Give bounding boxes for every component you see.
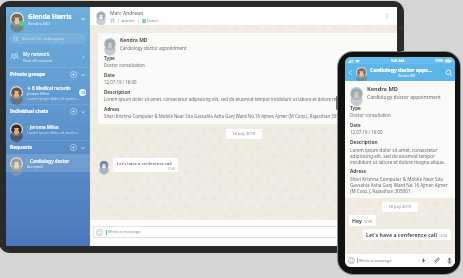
staticText: Type [350, 105, 361, 111]
button[interactable]: Attach file [433, 257, 440, 264]
button[interactable]: Back [346, 68, 355, 77]
staticText: 9:41 AM [391, 58, 404, 63]
staticText: Lorem ipsum dolor sit amet, consectetur … [350, 147, 450, 165]
button[interactable]: My network [6, 48, 90, 65]
button[interactable]: Cardiology doctor [6, 154, 90, 172]
button[interactable]: More options [382, 11, 392, 21]
staticText: 12:30 [439, 234, 448, 238]
button[interactable]: Private groups [6, 68, 90, 81]
staticText: 18 July 2019 [388, 204, 412, 210]
staticText: Glenda Harris [28, 12, 72, 21]
button[interactable]: 6 Medical records [6, 81, 90, 104]
staticText: 12:30 [364, 220, 373, 224]
staticText: Search for colleagues [22, 36, 65, 42]
staticText: Description [104, 89, 131, 95]
staticText: 18 July 2019 [232, 131, 256, 137]
staticText: Cardiology doctor appointment [120, 45, 187, 51]
staticText: Cardiology doctor appointment [367, 94, 441, 101]
staticText: 6 Medical records [32, 85, 71, 91]
staticText: Doctor consultation [104, 62, 145, 68]
staticText: Let's have a conference call [366, 231, 437, 238]
staticText: Kendra MD [370, 74, 444, 78]
button[interactable]: Requests [6, 141, 90, 154]
staticText: Kendra MD [28, 21, 51, 27]
staticText: Adress [350, 168, 367, 175]
staticText: Cardiology doctor appo... [370, 67, 433, 74]
staticText: Accepted [27, 164, 43, 169]
staticText: Lorem ipsum dolor sit amet s... [27, 130, 80, 135]
staticText: Marc Andrews [110, 10, 144, 17]
button[interactable]: Individual chats [6, 105, 90, 118]
button[interactable]: Quick action [420, 257, 427, 264]
staticText: Hey [352, 217, 362, 224]
staticText: Lorem ipsum dolor sit amet, consectetur … [104, 96, 362, 102]
staticText: View all contacts [23, 58, 53, 63]
staticText: Description [350, 139, 378, 146]
button[interactable]: Search for colleagues [10, 33, 86, 44]
staticText: Date [350, 122, 361, 128]
staticText: Write a message [108, 229, 141, 235]
button[interactable]: Search [444, 68, 453, 77]
staticText: 12.07.19 / 16:00 [104, 79, 137, 85]
staticText: Shari Krishna Computer & Mobile Near Sit… [104, 113, 347, 119]
button[interactable]: Glenda Harris [6, 9, 90, 29]
staticText: Adress [104, 106, 120, 112]
button[interactable]: Record voice message [446, 257, 453, 264]
staticText: 12:30 [117, 167, 175, 171]
staticText: Jerome Milso [27, 91, 49, 96]
staticText: Doctor [147, 18, 159, 23]
button[interactable]: Jerome Milso [6, 118, 90, 140]
staticText: My network [23, 51, 50, 58]
staticText: active [125, 18, 135, 23]
staticText: 100% [435, 59, 444, 63]
staticText: Jerome Milso [30, 124, 59, 130]
staticText: Requests [10, 144, 70, 151]
staticText: 12 [81, 90, 85, 95]
staticText: Let's have a conference call [117, 161, 172, 167]
staticText: 12.07.19 / 16:00 [350, 129, 383, 135]
staticText: Kendra MD [367, 85, 398, 93]
staticText: Kendra MD [120, 37, 148, 44]
staticText: Date [104, 72, 115, 78]
button[interactable]: Write a message [345, 254, 455, 267]
staticText: Write a message [359, 258, 420, 264]
staticText: Shari Krishna Computer & Mobile Near Sit… [350, 176, 450, 194]
staticText: Private groups [10, 71, 70, 78]
staticText: Type [104, 55, 115, 61]
staticText: Individual chats [10, 108, 70, 115]
staticText: Lorem ipsum dolor sit amet ri... [27, 96, 79, 101]
staticText: Cardiology doctor [30, 158, 70, 164]
button[interactable]: Write a message [93, 226, 392, 238]
staticText: Doctor consultation [350, 112, 391, 118]
